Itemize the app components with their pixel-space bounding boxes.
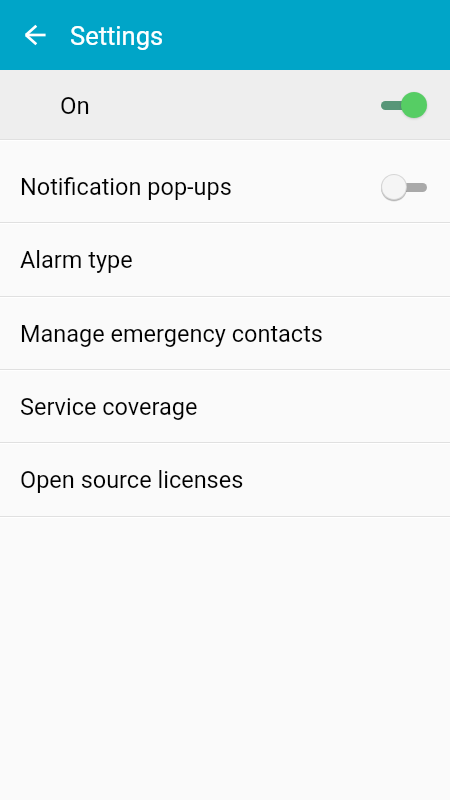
button[interactable]: On	[0, 70, 450, 139]
button[interactable]: Open source licenses	[0, 444, 450, 516]
staticText: Manage emergency contacts	[20, 320, 323, 348]
button[interactable]: Back	[13, 13, 57, 57]
button[interactable]: Service coverage	[0, 371, 450, 442]
staticText: On	[60, 92, 90, 120]
staticText: Alarm type	[20, 246, 133, 274]
button[interactable]: Alarm type	[0, 224, 450, 296]
staticText: Settings	[70, 21, 164, 51]
staticText: Notification pop-ups	[20, 173, 232, 201]
button[interactable]: Manage emergency contacts	[0, 298, 450, 369]
staticText: Open source licenses	[20, 466, 244, 494]
staticText: Service coverage	[20, 393, 198, 421]
button[interactable]: Notification pop-ups	[0, 141, 450, 222]
